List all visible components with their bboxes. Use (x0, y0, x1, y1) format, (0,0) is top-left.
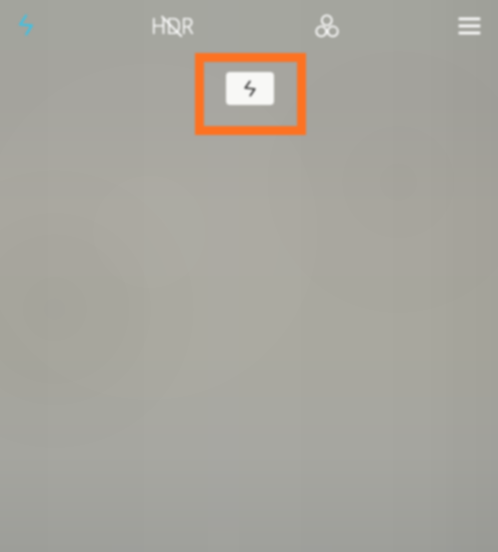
staticText: HDR (151, 12, 194, 41)
button[interactable]: Flash (11, 10, 41, 40)
button[interactable]: Flash mode (226, 72, 274, 105)
button[interactable]: Filters (311, 5, 343, 37)
button[interactable]: Menu (452, 8, 486, 42)
button[interactable]: HDR (146, 6, 198, 46)
